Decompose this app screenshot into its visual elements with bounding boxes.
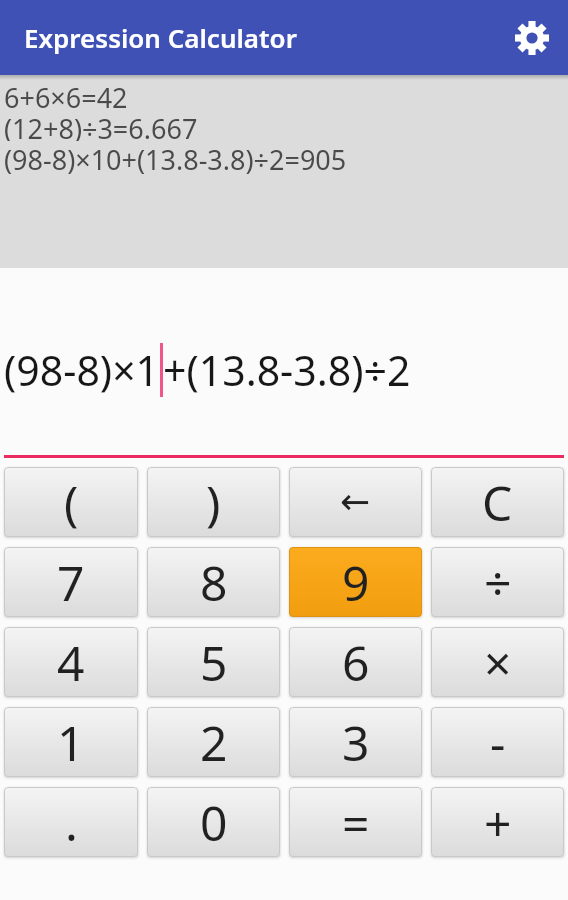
button[interactable]: 9 xyxy=(289,547,422,617)
staticText: 3 xyxy=(342,710,370,775)
staticText: 6 xyxy=(342,630,370,695)
staticText: ÷ xyxy=(484,550,512,615)
button[interactable]: 4 xyxy=(4,627,138,697)
staticText: ( xyxy=(64,470,79,535)
button[interactable]: + xyxy=(431,787,564,857)
button[interactable]: ← xyxy=(289,467,422,537)
staticText: 2 xyxy=(200,710,228,775)
staticText: 6+6×6=42 xyxy=(4,79,128,110)
staticText: + xyxy=(484,790,512,855)
staticText: 4 xyxy=(57,630,85,695)
button[interactable]: C xyxy=(431,467,564,537)
button[interactable]: 6 xyxy=(289,627,422,697)
staticText: C xyxy=(482,470,513,535)
button[interactable]: 1 xyxy=(4,707,138,777)
staticText: ) xyxy=(206,470,221,535)
button[interactable]: 2 xyxy=(147,707,280,777)
button[interactable]: = xyxy=(289,787,422,857)
staticText: (98-8)×1 xyxy=(4,342,160,398)
staticText: 7 xyxy=(57,550,85,615)
staticText: = xyxy=(342,790,370,855)
staticText: +(13.8-3.8)÷2 xyxy=(163,342,411,398)
button[interactable]: 5 xyxy=(147,627,280,697)
button[interactable]: - xyxy=(431,707,564,777)
button[interactable]: 7 xyxy=(4,547,138,617)
staticText: 9 xyxy=(342,550,370,615)
button[interactable]: 8 xyxy=(147,547,280,617)
staticText: 1 xyxy=(57,710,85,775)
button[interactable] xyxy=(512,18,552,58)
staticText: Expression Calculator xyxy=(24,20,297,55)
button[interactable]: ÷ xyxy=(431,547,564,617)
staticText: . xyxy=(65,790,78,855)
button[interactable]: ( xyxy=(4,467,138,537)
staticText: 5 xyxy=(200,630,228,695)
staticText: 8 xyxy=(200,550,228,615)
staticText: × xyxy=(484,630,512,695)
staticText: - xyxy=(490,710,506,775)
staticText: (12+8)÷3=6.667 xyxy=(4,110,198,141)
button[interactable]: × xyxy=(431,627,564,697)
staticText: (98-8)×10+(13.8-3.8)÷2=905 xyxy=(4,141,347,178)
button[interactable]: 3 xyxy=(289,707,422,777)
button[interactable]: ) xyxy=(147,467,280,537)
staticText: ← xyxy=(340,481,371,523)
button[interactable]: . xyxy=(4,787,138,857)
button[interactable]: 0 xyxy=(147,787,280,857)
staticText: 0 xyxy=(200,790,228,855)
